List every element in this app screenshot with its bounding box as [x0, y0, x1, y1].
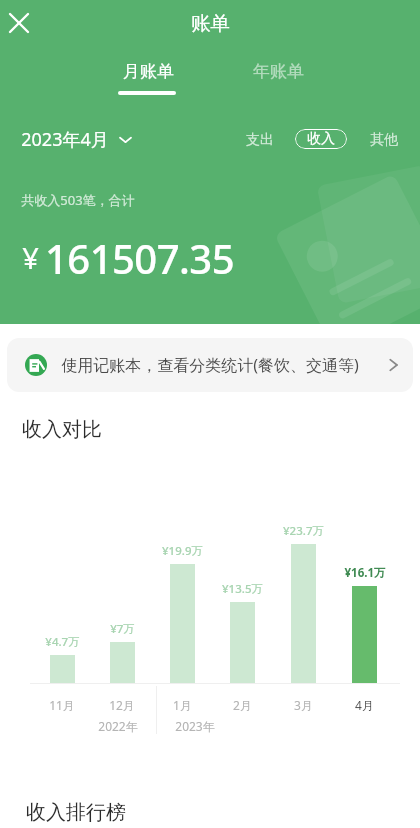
button[interactable]: 支出 — [242, 127, 278, 151]
staticText: 共收入503笔，合计 — [21, 191, 135, 209]
staticText: 12月 — [109, 697, 135, 713]
staticText: 2月 — [233, 697, 252, 713]
staticText: 收入对比 — [22, 417, 102, 442]
staticText: 161507.35 — [45, 231, 234, 285]
button[interactable]: 关闭 — [2, 6, 36, 40]
staticText: ¥13.5万 — [222, 581, 263, 597]
staticText: 1月 — [173, 697, 192, 713]
staticText: ¥4.7万 — [45, 634, 80, 650]
staticText: 月账单 — [123, 61, 174, 82]
staticText: 收入排行榜 — [26, 800, 126, 825]
button[interactable]: 其他 — [366, 127, 402, 151]
staticText: 4月 — [355, 697, 374, 713]
staticText: 2023年 — [175, 718, 215, 734]
button[interactable]: 月账单 — [111, 59, 185, 97]
staticText: 11月 — [49, 697, 75, 713]
button[interactable]: 使用记账本，查看分类统计(餐饮、交通等) — [7, 338, 413, 392]
staticText: ¥ — [22, 238, 39, 277]
staticText: 3月 — [294, 697, 313, 713]
button[interactable]: 年账单 — [245, 59, 312, 93]
staticText: 年账单 — [253, 61, 304, 82]
staticText: 使用记账本，查看分类统计(餐饮、交通等) — [61, 354, 359, 376]
staticText: ¥16.1万 — [344, 565, 386, 581]
staticText: ¥7万 — [110, 621, 135, 637]
staticText: 2022年 — [98, 718, 138, 734]
staticText: 账单 — [191, 11, 230, 36]
staticText: 2023年4月 — [21, 127, 109, 151]
button[interactable]: 收入 — [295, 129, 347, 149]
staticText: 收入 — [307, 130, 335, 148]
staticText: ¥23.7万 — [283, 523, 324, 539]
staticText: ¥19.9万 — [162, 543, 203, 559]
button[interactable]: 2023年4月 — [21, 127, 132, 151]
